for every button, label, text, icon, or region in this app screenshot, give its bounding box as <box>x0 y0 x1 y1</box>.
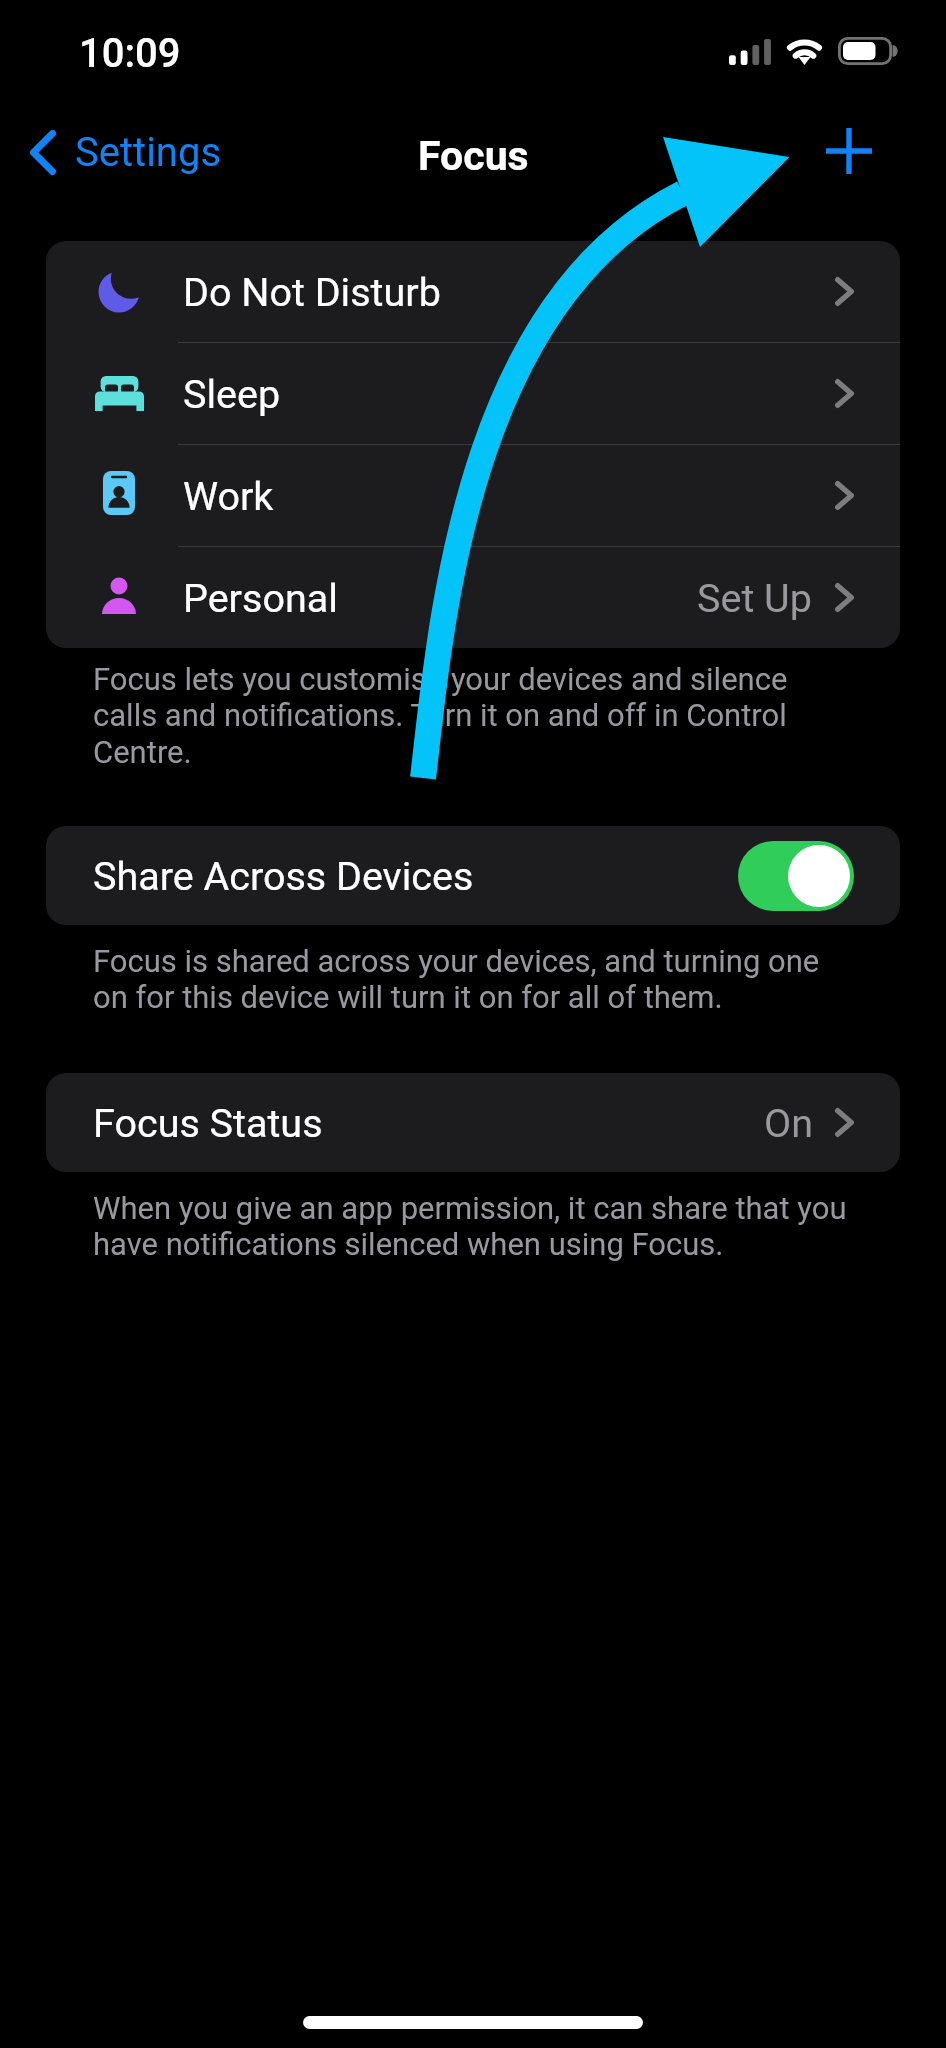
staticText: When you give an app permission, it can … <box>93 1190 853 1262</box>
staticText: Focus lets you customise your devices an… <box>93 661 853 770</box>
staticText: 10:09 <box>79 30 181 77</box>
staticText: On <box>764 1100 813 1146</box>
staticText: Do Not Disturb <box>183 269 441 315</box>
button[interactable]: Work <box>46 445 900 546</box>
button[interactable]: Personal <box>46 547 900 648</box>
staticText: Focus is shared across your devices, and… <box>93 943 853 1015</box>
staticText: Focus <box>418 132 529 180</box>
staticText: Sleep <box>183 371 281 417</box>
staticText: Share Across Devices <box>93 853 474 899</box>
button[interactable]: Share Across Devices <box>46 826 900 925</box>
button[interactable]: Sleep <box>46 343 900 444</box>
staticText: Work <box>183 473 274 519</box>
button[interactable]: Focus Status <box>46 1073 900 1172</box>
staticText: Settings <box>75 129 222 176</box>
staticText: Set Up <box>697 575 812 621</box>
button[interactable]: Share Across Devices <box>738 841 854 911</box>
staticText: Focus Status <box>93 1100 323 1146</box>
button[interactable]: Do Not Disturb <box>46 241 900 342</box>
staticText: Personal <box>183 575 338 621</box>
button[interactable]: Settings <box>14 112 238 192</box>
button[interactable]: Add new Focus <box>811 113 887 189</box>
